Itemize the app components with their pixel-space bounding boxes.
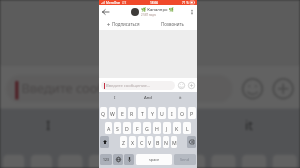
staticText: 18:56 [150, 1, 159, 5]
staticText: V [148, 139, 152, 146]
button[interactable]: H [153, 122, 161, 134]
button[interactable]: W [109, 107, 116, 119]
button[interactable]: E [58, 155, 83, 168]
button[interactable]: Back [99, 5, 112, 18]
button[interactable]: Voice input [124, 154, 134, 165]
staticText: W [34, 164, 49, 168]
button[interactable]: O [178, 107, 186, 119]
staticText: it [245, 118, 254, 136]
staticText: 2 587 подп. [141, 13, 157, 17]
staticText: S [116, 125, 119, 132]
staticText: I [171, 110, 173, 117]
button[interactable]: P [188, 107, 196, 119]
button[interactable]: U [158, 107, 166, 119]
button[interactable]: M [171, 136, 177, 148]
button[interactable]: space [136, 154, 172, 165]
button[interactable]: Attach [269, 75, 294, 99]
staticText: U [160, 110, 164, 117]
staticText: Send [180, 157, 190, 162]
staticText: And [144, 95, 152, 101]
button[interactable]: And [131, 92, 164, 103]
button[interactable]: T [119, 155, 144, 168]
staticText: Q [6, 164, 21, 168]
button[interactable]: Введите сообщение... [6, 75, 233, 103]
button[interactable]: I [211, 155, 236, 168]
button[interactable]: Q [3, 155, 24, 168]
staticText: LTE [122, 1, 127, 5]
staticText: 123 [103, 157, 109, 162]
button[interactable]: R [128, 107, 136, 119]
button[interactable]: Y [148, 107, 156, 119]
button[interactable]: P [272, 155, 297, 168]
staticText: O [248, 164, 263, 168]
button[interactable]: Позвонить [148, 18, 197, 30]
button[interactable]: K [173, 122, 181, 134]
button[interactable]: L [183, 122, 191, 134]
staticText: Введите сообщение... [21, 81, 159, 99]
button[interactable]: Send [174, 154, 196, 165]
button[interactable]: Q [100, 107, 107, 119]
staticText: H [155, 125, 159, 132]
staticText: B [156, 139, 160, 146]
button[interactable]: N [163, 136, 169, 148]
staticText: 71 % [182, 1, 189, 5]
button[interactable]: Emoji [239, 75, 263, 99]
button[interactable]: O [242, 155, 266, 168]
staticText: L [186, 125, 189, 132]
button[interactable]: it [164, 92, 197, 103]
staticText: Y [151, 110, 154, 117]
staticText: And [138, 118, 162, 136]
staticText: Y [159, 164, 168, 168]
button[interactable]: W [31, 155, 52, 168]
button[interactable]: X [129, 136, 136, 148]
button[interactable]: Y [150, 155, 174, 168]
staticText: J [166, 125, 168, 132]
button[interactable]: E [118, 107, 126, 119]
staticText: R [95, 164, 107, 168]
button[interactable]: Shift [100, 136, 109, 148]
staticText: МегаФон [106, 1, 121, 5]
button[interactable]: Подписаться [99, 18, 148, 30]
button[interactable]: More options [186, 5, 197, 18]
button[interactable]: A [105, 122, 112, 134]
button[interactable]: U [181, 155, 205, 168]
staticText: C [140, 139, 144, 146]
button[interactable]: I [168, 107, 176, 119]
staticText: it [179, 95, 182, 101]
staticText: K [175, 125, 179, 132]
staticText: P [279, 164, 291, 168]
button[interactable]: J [163, 122, 171, 134]
staticText: 🌿 Каналпро 🌿 [141, 7, 174, 13]
staticText: T [141, 110, 144, 117]
button[interactable]: I [99, 92, 131, 103]
button[interactable]: Emoji [177, 81, 185, 89]
button[interactable]: Z [120, 136, 127, 148]
button[interactable]: D [123, 122, 131, 134]
button[interactable]: Delete [187, 136, 196, 148]
staticText: A [107, 125, 111, 132]
button[interactable]: V [147, 136, 153, 148]
staticText: T [129, 164, 138, 168]
button[interactable]: G [143, 122, 151, 134]
staticText: M [172, 139, 177, 146]
staticText: F [136, 125, 139, 132]
button[interactable]: R [89, 155, 113, 168]
staticText: I [46, 118, 52, 136]
staticText: Z [122, 139, 125, 146]
button[interactable]: Change keyboard [113, 154, 123, 165]
button[interactable]: C [138, 136, 145, 148]
staticText: U [187, 164, 199, 168]
staticText: G [145, 125, 149, 132]
staticText: E [121, 110, 124, 117]
staticText: P [190, 110, 194, 117]
button[interactable]: B [155, 136, 161, 148]
button[interactable]: F [133, 122, 141, 134]
button[interactable]: S [114, 122, 121, 134]
button[interactable]: T [138, 107, 146, 119]
button[interactable]: Attach [187, 81, 195, 89]
button[interactable]: Введите сообщение... [101, 81, 175, 90]
button[interactable]: 123 [100, 154, 112, 165]
button[interactable]: And [98, 109, 199, 142]
